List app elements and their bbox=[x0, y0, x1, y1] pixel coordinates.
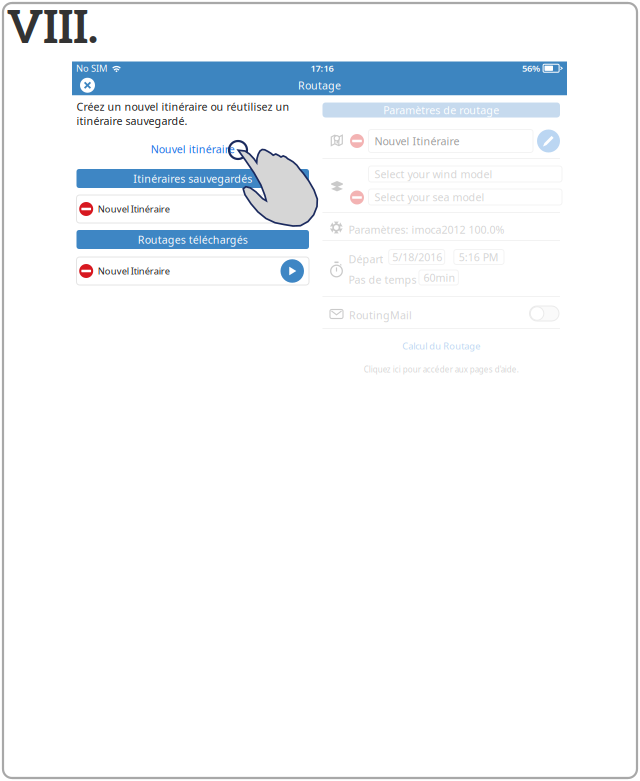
staticText: Cliquez ici pour accéder aux pages d'aid… bbox=[364, 364, 519, 375]
staticText: Nouvel Itinéraire bbox=[374, 134, 459, 148]
staticText: Select your wind model bbox=[374, 167, 492, 181]
staticText: 60min bbox=[423, 270, 455, 285]
staticText: No SIM bbox=[76, 62, 107, 74]
staticText: Départ bbox=[348, 252, 383, 266]
staticText: RoutingMail bbox=[349, 308, 412, 322]
staticText: Routages téléchargés bbox=[138, 232, 248, 247]
button[interactable]: Close bbox=[80, 78, 95, 93]
button[interactable]: Nouvel Itinéraire bbox=[76, 195, 309, 223]
staticText: Routage bbox=[298, 78, 341, 92]
staticText: Paramètres: imoca2012 100.0% bbox=[348, 222, 504, 237]
staticText: Nouvel Itinéraire bbox=[98, 265, 170, 277]
button[interactable]: Routages téléchargés bbox=[76, 230, 309, 249]
staticText: 56% bbox=[522, 62, 540, 74]
button[interactable]: Calcul du Routage bbox=[322, 339, 560, 352]
staticText: 5/18/2016 bbox=[392, 250, 442, 264]
staticText: Nouvel Itinéraire bbox=[98, 203, 170, 215]
staticText: Pas de temps bbox=[348, 272, 416, 287]
staticText: 17:16 bbox=[310, 62, 333, 74]
staticText: VIII. bbox=[7, 2, 98, 56]
staticText: Paramètres de routage bbox=[383, 103, 499, 117]
button[interactable]: RoutingMail toggle bbox=[529, 306, 559, 321]
staticText: 5:16 PM bbox=[459, 250, 499, 264]
staticText: Select your sea model bbox=[374, 190, 484, 204]
staticText: Itinéraires sauvegardés bbox=[133, 171, 252, 186]
button[interactable]: Edit route name bbox=[537, 129, 560, 152]
button[interactable]: Nouvel itinéraire bbox=[76, 142, 309, 155]
button[interactable]: Itinéraires sauvegardés bbox=[76, 169, 309, 188]
staticText: Calcul du Routage bbox=[402, 340, 480, 352]
button[interactable]: Nouvel Itinéraire bbox=[76, 257, 309, 285]
staticText: Nouvel itinéraire bbox=[151, 142, 235, 156]
staticText: Créez un nouvel itinéraire ou réutilisez… bbox=[76, 99, 289, 128]
